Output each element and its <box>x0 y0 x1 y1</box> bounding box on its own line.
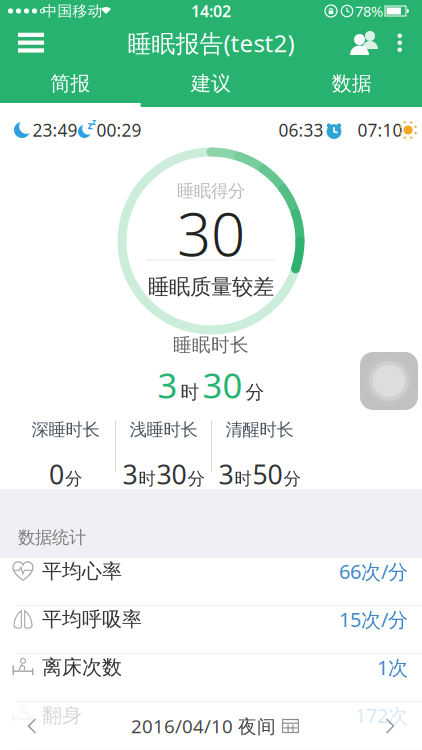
staticText: 50 <box>252 456 282 492</box>
button[interactable]: 数据 <box>281 64 422 103</box>
staticText: 睡眠时长 <box>173 333 249 356</box>
staticText: 深睡时长 <box>31 419 99 440</box>
staticText: 睡眠得分 <box>177 180 245 202</box>
staticText: 数据统计 <box>18 527 86 548</box>
staticText: 离床次数 <box>42 655 122 680</box>
staticText: 30 <box>177 193 245 273</box>
staticText: 建议 <box>191 71 231 96</box>
button[interactable]: 平均呼吸率 <box>0 606 422 654</box>
staticText: 时 <box>180 381 199 404</box>
staticText: 清醒时长 <box>225 419 293 440</box>
button[interactable]: 用户 <box>350 31 380 55</box>
staticText: 66次/分 <box>339 558 408 585</box>
staticText: 23:49 <box>32 118 77 141</box>
staticText: 翻身 <box>42 703 82 728</box>
button[interactable]: 离床次数 <box>0 654 422 702</box>
staticText: 分 <box>245 381 264 404</box>
button[interactable]: 辅助触控 <box>360 352 418 410</box>
staticText: 平均心率 <box>42 559 122 584</box>
button[interactable]: 选择日期 <box>131 714 299 738</box>
staticText: 15次/分 <box>339 606 408 633</box>
staticText: 3 <box>218 456 233 492</box>
staticText: 时 <box>234 468 251 489</box>
staticText: z <box>87 118 92 132</box>
button[interactable]: 翻身 <box>0 702 422 750</box>
staticText: 172次 <box>355 702 408 729</box>
staticText: 分 <box>65 468 82 489</box>
staticText: 14:02 <box>191 0 231 22</box>
staticText: 数据 <box>332 71 372 96</box>
button[interactable]: 建议 <box>141 64 281 103</box>
button[interactable]: 菜单 <box>18 33 44 53</box>
staticText: 30 <box>202 362 242 408</box>
staticText: 时 <box>138 468 155 489</box>
button[interactable]: 平均心率 <box>0 558 422 606</box>
button[interactable]: 后一天 <box>385 717 395 735</box>
staticText: 30 <box>156 456 186 492</box>
staticText: 浅睡时长 <box>129 419 197 440</box>
staticText: 78% <box>355 1 383 21</box>
button[interactable]: 更多 <box>397 33 402 52</box>
staticText: 睡眠质量较差 <box>148 274 274 300</box>
staticText: 3 <box>157 362 177 408</box>
staticText: 2016/04/10 夜间 <box>131 714 276 738</box>
staticText: 1次 <box>377 654 408 681</box>
button[interactable]: 简报 <box>0 64 141 103</box>
staticText: 分 <box>187 468 204 489</box>
staticText: 中国移动 <box>42 2 102 20</box>
staticText: 睡眠报告(test2) <box>127 27 294 59</box>
staticText: 00:29 <box>96 118 141 141</box>
staticText: 简报 <box>50 71 90 96</box>
staticText: 0 <box>49 456 64 492</box>
staticText: 分 <box>283 468 300 489</box>
staticText: 06:33 <box>278 118 323 141</box>
staticText: 平均呼吸率 <box>42 607 142 632</box>
staticText: 07:10 <box>357 118 402 141</box>
staticText: z <box>92 117 96 127</box>
button[interactable]: 前一天 <box>27 717 37 735</box>
staticText: 3 <box>122 456 137 492</box>
